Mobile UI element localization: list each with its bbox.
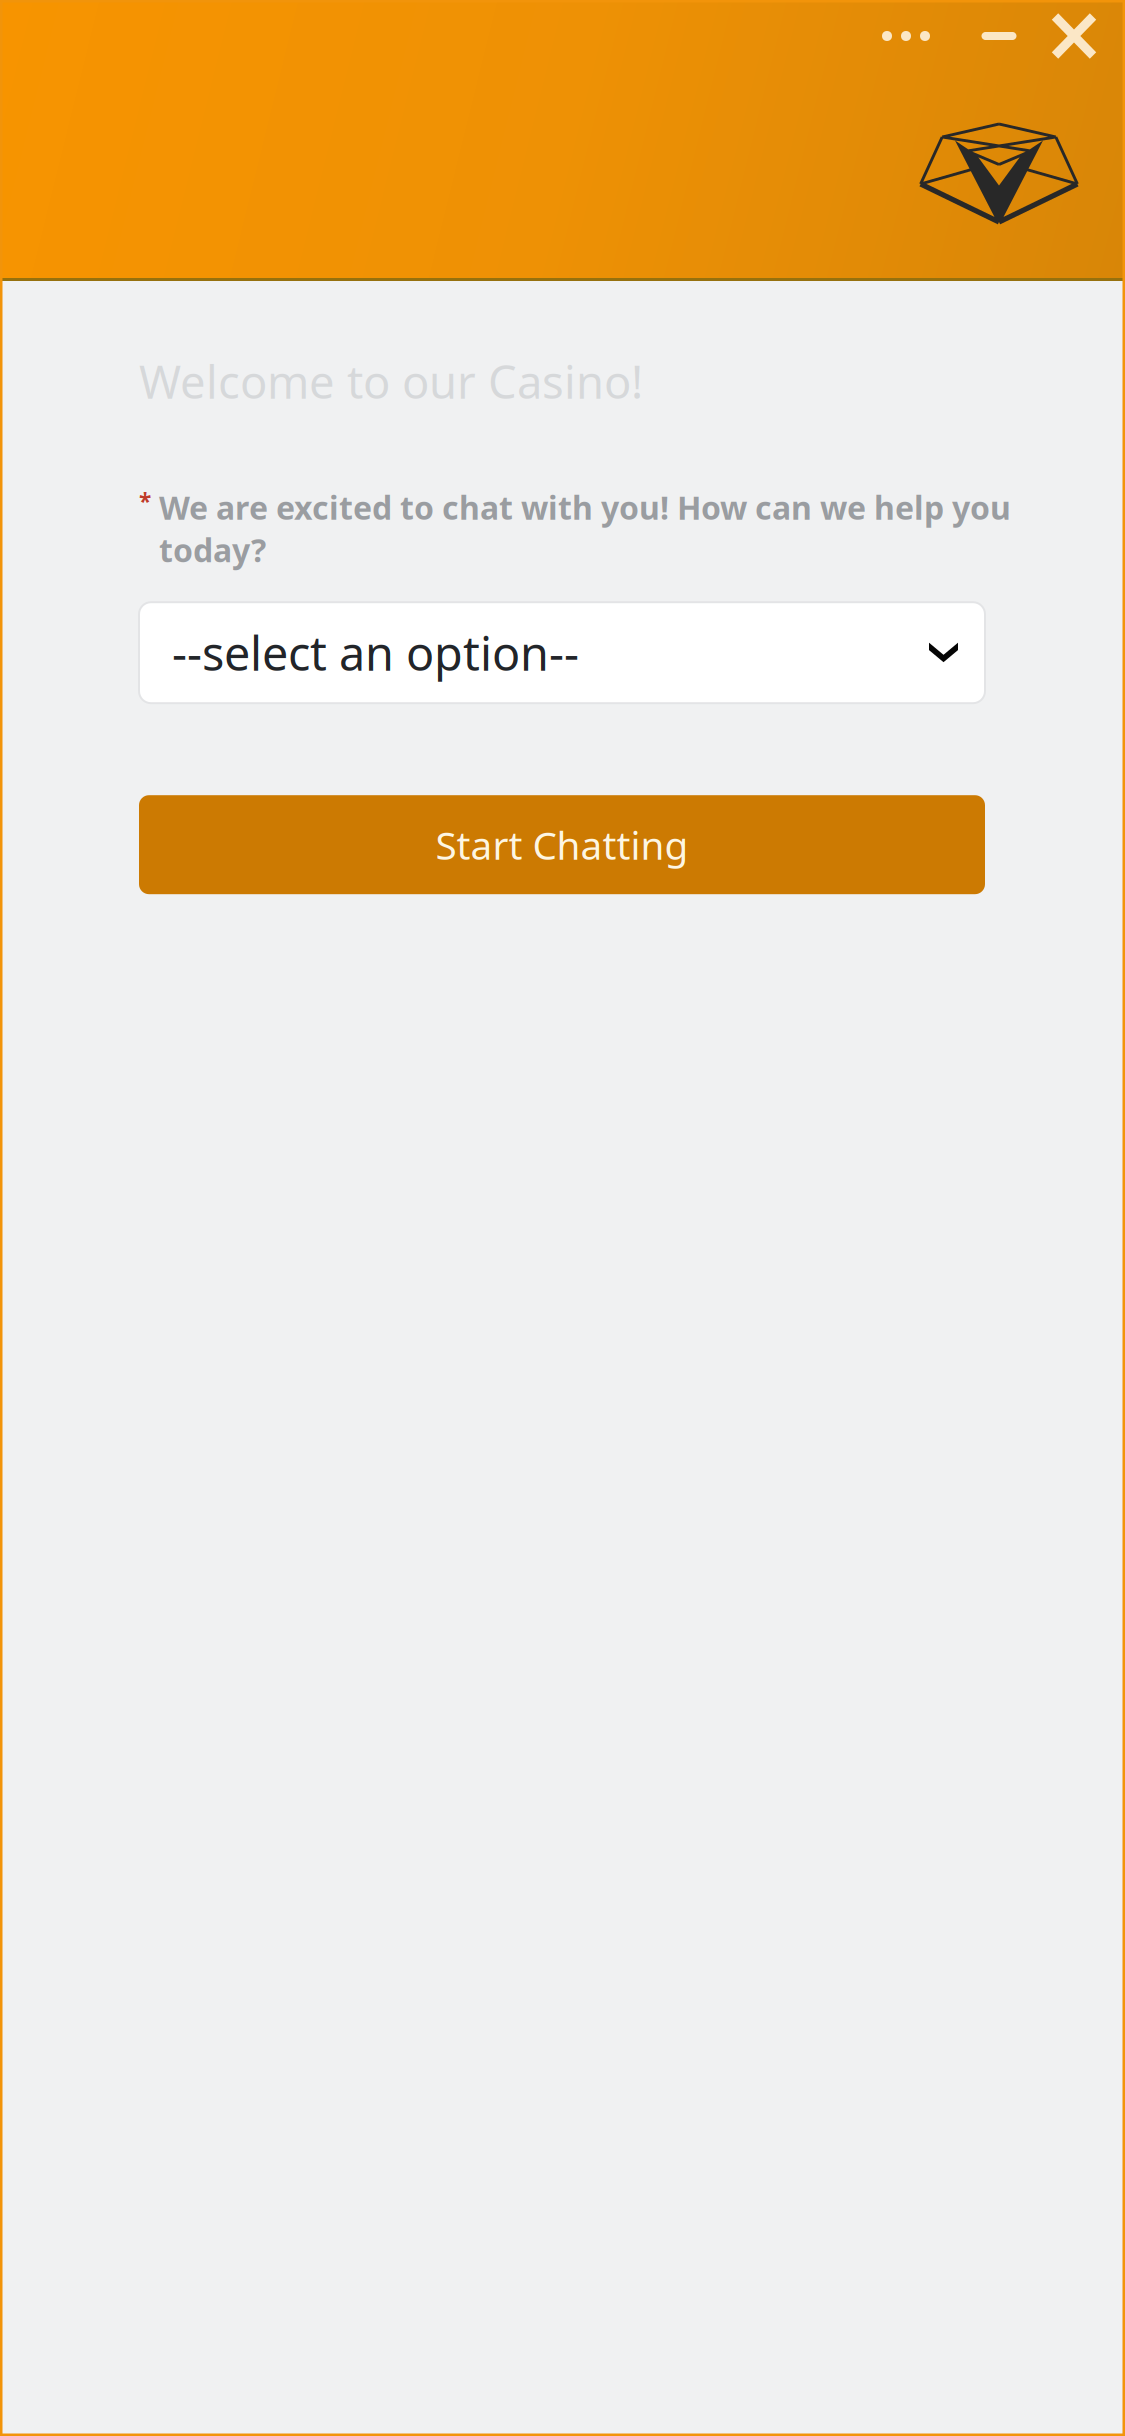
staticText: We are excited to chat with you! How can… <box>159 486 1011 571</box>
staticText: Start Chatting <box>435 819 688 870</box>
button[interactable]: Minimize <box>962 1 1036 71</box>
button[interactable]: Start Chatting <box>139 795 985 894</box>
button[interactable]: More options <box>867 1 945 71</box>
button[interactable]: Select an option <box>139 602 985 703</box>
button[interactable]: Close chat <box>1037 1 1111 71</box>
staticText: --select an option-- <box>172 622 579 684</box>
staticText: Welcome to our Casino! <box>139 351 643 411</box>
staticText: * <box>139 486 151 516</box>
